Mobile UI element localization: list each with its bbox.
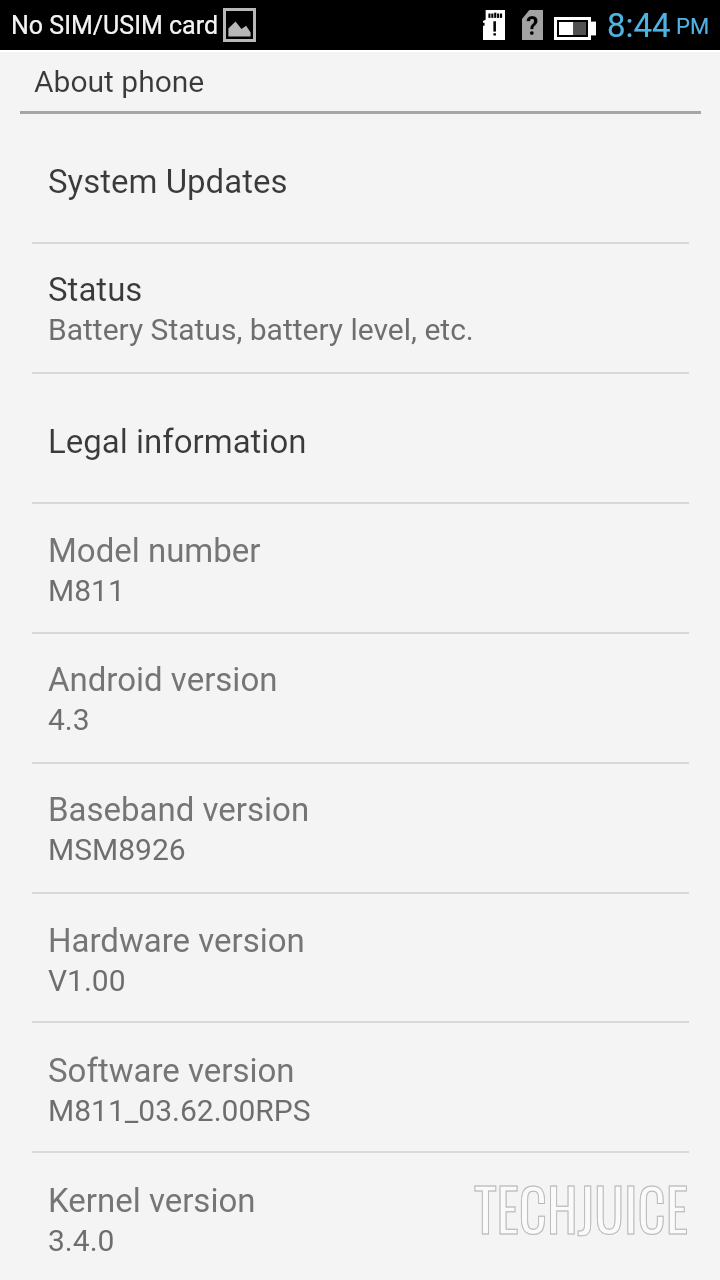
button[interactable]: Android version <box>0 634 720 762</box>
other: No media image <box>223 8 256 42</box>
staticText: V1.00 <box>48 963 126 998</box>
button[interactable]: Legal information <box>0 374 720 502</box>
staticText: Kernel version <box>48 1181 256 1220</box>
staticText: Android version <box>48 660 278 699</box>
staticText: Battery Status, battery level, etc. <box>48 312 474 347</box>
staticText: 4.3 <box>48 702 90 737</box>
staticText: System Updates <box>48 162 288 201</box>
button[interactable]: Kernel version <box>0 1153 720 1280</box>
staticText: Software version <box>48 1051 295 1090</box>
button[interactable]: Status <box>0 244 720 372</box>
staticText: Baseband version <box>48 790 310 829</box>
staticText: Legal information <box>48 422 307 461</box>
staticText: M811 <box>48 573 125 608</box>
staticText: Status <box>48 270 143 309</box>
button[interactable]: Software version <box>0 1023 720 1151</box>
button[interactable]: Model number <box>0 504 720 632</box>
staticText: No SIM/USIM card <box>11 11 218 40</box>
button[interactable]: Baseband version <box>0 764 720 892</box>
other: SIM card missing <box>522 10 543 40</box>
staticText: ? <box>526 12 539 41</box>
staticText: MSM8926 <box>48 832 186 867</box>
staticText: About phone <box>34 64 205 99</box>
other: SD card problem <box>483 10 505 40</box>
staticText: 8:44 <box>607 6 671 45</box>
staticText: Hardware version <box>48 921 305 960</box>
staticText: PM <box>676 14 710 40</box>
staticText: TECHJUICE <box>474 1163 689 1251</box>
staticText: 3.4.0 <box>48 1223 115 1258</box>
staticText: Model number <box>48 531 261 570</box>
staticText: M811_03.62.00RPS <box>48 1093 311 1128</box>
button[interactable]: System Updates <box>0 114 720 242</box>
staticText: TECHJUICE <box>474 1163 689 1251</box>
button[interactable]: Hardware version <box>0 894 720 1021</box>
other: Battery 50 percent <box>554 17 596 40</box>
